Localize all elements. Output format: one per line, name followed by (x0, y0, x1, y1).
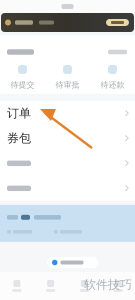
button[interactable]: Tab (34, 280, 68, 292)
staticText: 待还款 (100, 80, 124, 90)
button[interactable]: Tab (0, 280, 34, 292)
button[interactable]: 券包 (0, 126, 135, 151)
button[interactable]: 待提交 (0, 65, 45, 90)
staticText: 软件技巧 (84, 277, 132, 292)
button[interactable]: Tab (101, 280, 135, 292)
staticText: 订单 (7, 106, 31, 121)
button[interactable]: 订单 (0, 101, 135, 126)
button[interactable]: Tab (67, 280, 101, 292)
button[interactable]: 待还款 (90, 65, 135, 90)
button[interactable] (0, 205, 135, 242)
staticText: 待提交 (10, 80, 34, 90)
button[interactable] (1, 13, 134, 32)
button[interactable] (0, 151, 135, 176)
staticText: 券包 (7, 131, 31, 146)
button[interactable] (47, 257, 98, 268)
button[interactable]: 待审批 (45, 65, 90, 90)
button[interactable] (0, 176, 135, 201)
staticText: 待审批 (55, 80, 79, 90)
